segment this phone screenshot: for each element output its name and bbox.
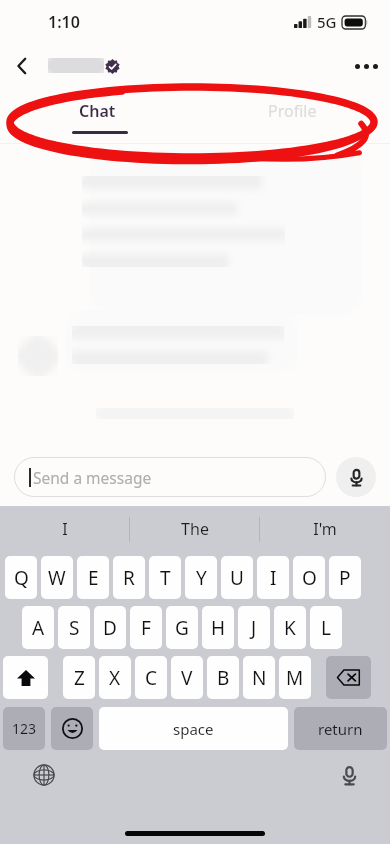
staticText: D	[103, 615, 117, 641]
button[interactable]: Chat	[0, 88, 195, 144]
button[interactable]: return	[294, 707, 387, 750]
staticText: W	[48, 565, 66, 591]
button[interactable]: F	[130, 606, 162, 649]
button[interactable]: T	[149, 556, 181, 599]
button[interactable]: J	[238, 606, 270, 649]
staticText: O	[302, 565, 317, 591]
staticText: F	[141, 615, 151, 641]
button[interactable]: P	[329, 556, 361, 599]
button[interactable]: U	[221, 556, 253, 599]
staticText: Profile	[268, 100, 317, 122]
staticText: G	[175, 615, 189, 641]
staticText: Chat	[79, 100, 116, 122]
button[interactable]: C	[135, 656, 167, 699]
button[interactable]: W	[41, 556, 73, 599]
button[interactable]: Back	[0, 44, 44, 88]
button[interactable]: L	[310, 606, 342, 649]
staticText: Q	[14, 565, 29, 591]
button[interactable]: Change keyboard language	[27, 758, 61, 792]
button[interactable]: Shift	[3, 656, 48, 699]
staticText: A	[32, 615, 45, 641]
button[interactable]: M	[279, 656, 311, 699]
button[interactable]: More options	[342, 44, 390, 88]
staticText: U	[230, 565, 244, 591]
staticText: 1:10	[48, 11, 80, 33]
button[interactable]: H	[202, 606, 234, 649]
staticText: 5G	[317, 12, 337, 32]
button[interactable]: Voice message	[336, 457, 376, 497]
button[interactable]: Send a message	[14, 457, 326, 497]
staticText: P	[339, 565, 351, 591]
button[interactable]: 123	[3, 707, 45, 750]
button[interactable]: G	[166, 606, 198, 649]
staticText: K	[284, 615, 296, 641]
staticText: H	[211, 615, 226, 641]
staticText: I	[62, 518, 68, 540]
staticText: S	[69, 615, 80, 641]
button[interactable]: B	[207, 656, 239, 699]
button[interactable]: Z	[63, 656, 95, 699]
button[interactable]: R	[113, 556, 145, 599]
staticText: L	[321, 615, 331, 641]
staticText: M	[286, 665, 304, 691]
button[interactable]: Profile	[195, 88, 390, 144]
staticText: Y	[196, 565, 207, 591]
button[interactable]: I	[257, 556, 289, 599]
staticText: The	[181, 518, 209, 540]
staticText: C	[145, 665, 158, 691]
button[interactable]: A	[22, 606, 54, 649]
button[interactable]: X	[99, 656, 131, 699]
staticText: J	[251, 615, 257, 641]
button[interactable]: I'm	[260, 506, 390, 552]
staticText: I'm	[313, 518, 337, 540]
staticText: 123	[12, 719, 37, 738]
button[interactable]: N	[243, 656, 275, 699]
button[interactable]: Emoji	[51, 707, 93, 750]
staticText: T	[160, 565, 171, 591]
button[interactable]: V	[171, 656, 203, 699]
staticText: N	[252, 665, 267, 691]
staticText: E	[88, 565, 99, 591]
staticText: V	[181, 665, 193, 691]
staticText: I	[270, 565, 277, 591]
staticText: Z	[74, 665, 85, 691]
button[interactable]: The	[130, 506, 260, 552]
staticText: R	[123, 565, 135, 591]
button[interactable]: K	[274, 606, 306, 649]
staticText: Send a message	[33, 467, 152, 488]
staticText: B	[217, 665, 230, 691]
button[interactable]: Q	[5, 556, 37, 599]
button[interactable]: E	[77, 556, 109, 599]
button[interactable]: Dictation	[332, 758, 366, 792]
button[interactable]: Backspace	[326, 656, 371, 699]
staticText: return	[318, 719, 363, 739]
button[interactable]: space	[99, 707, 288, 750]
button[interactable]: I	[0, 506, 130, 552]
button[interactable]: D	[94, 606, 126, 649]
staticText: space	[173, 719, 214, 739]
button[interactable]: Y	[185, 556, 217, 599]
button[interactable]: S	[58, 606, 90, 649]
button[interactable]: O	[293, 556, 325, 599]
staticText: X	[109, 665, 121, 691]
